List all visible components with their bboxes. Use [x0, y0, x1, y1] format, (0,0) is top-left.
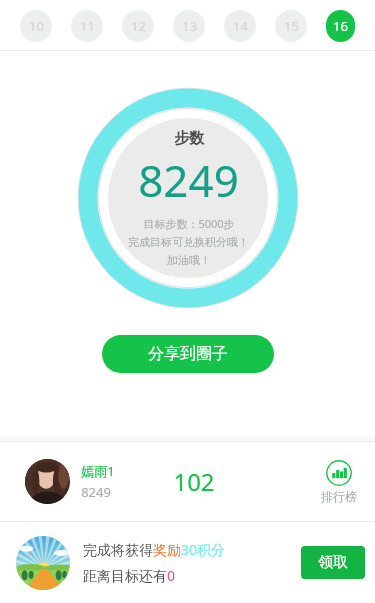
staticText: 11: [80, 17, 95, 35]
button[interactable]: 嫣雨1: [0, 442, 375, 521]
staticText: 完成将获得奖励30积分: [83, 540, 226, 559]
staticText: 排行榜: [321, 489, 357, 504]
staticText: 嫣雨1: [81, 462, 115, 480]
staticText: 分享到圈子: [148, 344, 228, 364]
staticText: 步数: [174, 129, 204, 148]
button[interactable]: 13: [173, 10, 205, 42]
button[interactable]: 10: [20, 10, 52, 42]
staticText: 完成目标可兑换积分哦！: [128, 235, 249, 249]
button[interactable]: 领取: [301, 546, 365, 579]
staticText: 加油哦！: [167, 253, 211, 267]
staticText: 10: [29, 17, 44, 35]
staticText: 8249: [138, 150, 239, 210]
staticText: 13: [182, 17, 197, 35]
button[interactable]: 分享到圈子: [102, 335, 274, 373]
staticText: 14: [233, 17, 248, 35]
button[interactable]: 16: [326, 10, 355, 42]
staticText: 领取: [318, 553, 348, 572]
button[interactable]: 排行榜: [321, 460, 357, 504]
button[interactable]: 14: [224, 10, 256, 42]
staticText: 102: [173, 465, 215, 498]
button[interactable]: 15: [275, 10, 307, 42]
staticText: 距离目标还有0: [83, 566, 176, 585]
button[interactable]: 11: [71, 10, 103, 42]
staticText: 目标步数：5000步: [143, 216, 235, 231]
staticText: 8249: [81, 483, 111, 501]
staticText: 15: [284, 17, 299, 35]
staticText: 16: [333, 17, 348, 35]
staticText: 12: [131, 17, 146, 35]
button[interactable]: 12: [122, 10, 154, 42]
